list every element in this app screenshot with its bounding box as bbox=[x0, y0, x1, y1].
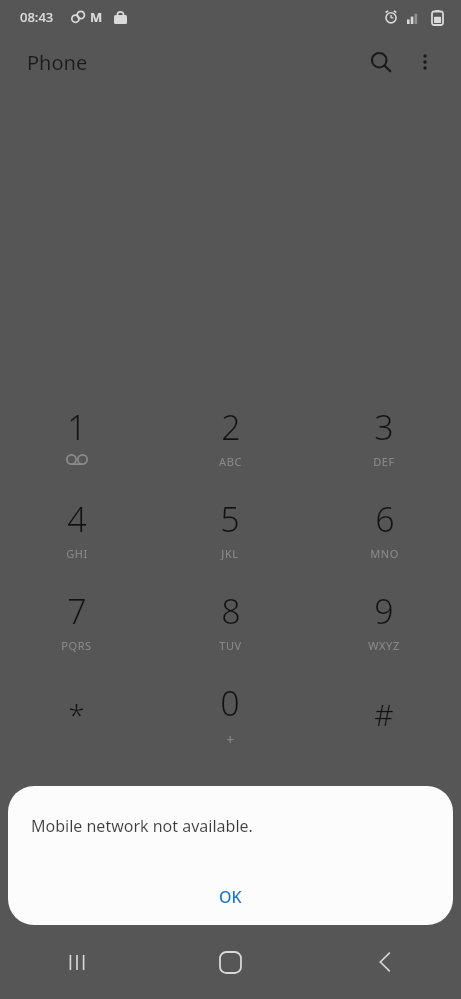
staticText: 6 bbox=[375, 496, 395, 542]
staticText: 4 bbox=[67, 496, 87, 542]
staticText: Phone bbox=[27, 49, 88, 76]
staticText: + bbox=[226, 730, 235, 749]
button[interactable]: 6 bbox=[307, 488, 461, 580]
staticText: Mobile network not available. bbox=[31, 815, 253, 837]
staticText: 7 bbox=[67, 588, 87, 634]
staticText: MNO bbox=[370, 546, 399, 561]
button[interactable]: 1 bbox=[0, 396, 153, 488]
staticText: 9 bbox=[374, 588, 394, 634]
button[interactable]: 8 bbox=[153, 580, 307, 672]
staticText: GHI bbox=[66, 546, 88, 561]
staticText: 5 bbox=[220, 496, 240, 542]
staticText: ABC bbox=[219, 454, 242, 469]
button[interactable]: 9 bbox=[307, 580, 461, 672]
staticText: 08:43 bbox=[20, 8, 54, 26]
staticText: TUV bbox=[219, 638, 242, 653]
staticText: 1 bbox=[67, 404, 87, 450]
button[interactable]: * bbox=[0, 672, 153, 764]
button[interactable]: OK bbox=[8, 869, 453, 925]
button[interactable]: 7 bbox=[0, 580, 153, 672]
button[interactable]: Recent apps bbox=[0, 925, 153, 999]
button[interactable]: Back bbox=[307, 925, 461, 999]
staticText: M bbox=[90, 8, 103, 26]
staticText: 2 bbox=[221, 404, 241, 450]
button[interactable]: Home bbox=[153, 925, 307, 999]
staticText: # bbox=[374, 694, 394, 735]
button[interactable]: Search bbox=[359, 40, 403, 84]
button[interactable]: 4 bbox=[0, 488, 153, 580]
button[interactable]: More options bbox=[403, 40, 447, 84]
staticText: JKL bbox=[221, 546, 239, 561]
staticText: 3 bbox=[374, 404, 394, 450]
staticText: WXYZ bbox=[368, 638, 400, 653]
button[interactable]: 0 bbox=[153, 672, 307, 764]
staticText: 8 bbox=[221, 588, 241, 634]
staticText: * bbox=[68, 694, 85, 735]
button[interactable]: 2 bbox=[153, 396, 307, 488]
button[interactable]: 5 bbox=[153, 488, 307, 580]
staticText: OK bbox=[219, 886, 242, 908]
button[interactable]: # bbox=[307, 672, 461, 764]
staticText: DEF bbox=[373, 454, 395, 469]
button[interactable]: 3 bbox=[307, 396, 461, 488]
staticText: 0 bbox=[220, 680, 240, 726]
staticText: PQRS bbox=[61, 638, 92, 653]
